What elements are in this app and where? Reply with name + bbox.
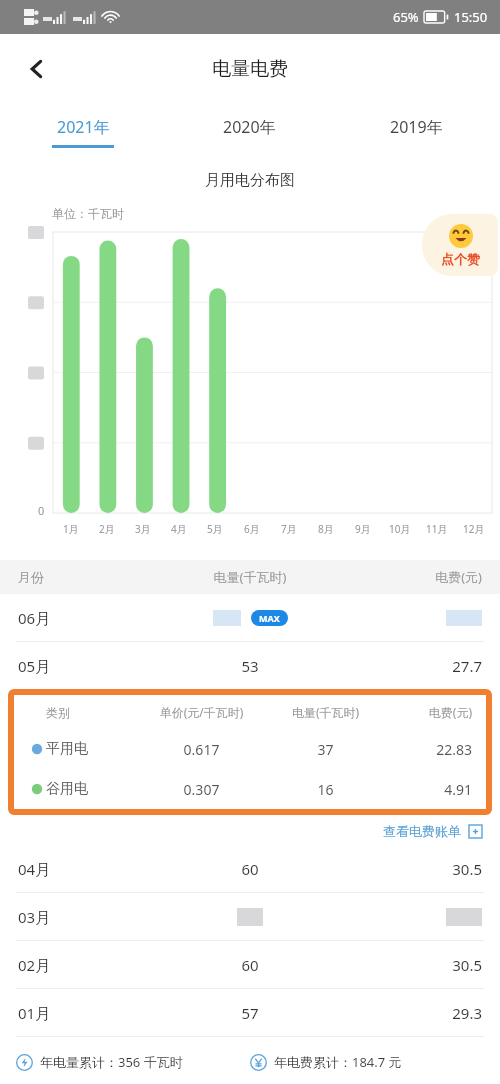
staticText: 电费(元) xyxy=(337,568,482,586)
button[interactable]: 点个赞 xyxy=(422,214,498,276)
button[interactable]: 04月 xyxy=(0,845,500,892)
staticText: 2019年 xyxy=(390,116,443,138)
staticText: 查看电费账单 xyxy=(383,823,461,839)
staticText: 单位：千瓦时 xyxy=(52,206,124,221)
staticText: 57 xyxy=(163,1003,337,1023)
staticText: 8月 xyxy=(318,522,334,536)
button[interactable]: 2021年 xyxy=(0,104,166,160)
button[interactable]: 03月 xyxy=(0,893,500,940)
staticText: 01月 xyxy=(18,1003,163,1023)
button[interactable]: 2019年 xyxy=(333,104,500,160)
staticText: 0.617 xyxy=(135,740,268,759)
staticText: 2021年 xyxy=(57,116,110,138)
staticText: 2月 xyxy=(99,522,115,536)
button[interactable]: 02月 xyxy=(0,941,500,988)
staticText: 30.5 xyxy=(337,955,482,975)
staticText: 年电量累计：356 千瓦时 xyxy=(40,1053,183,1071)
staticText: 16 xyxy=(268,780,383,799)
button[interactable]: 2020年 xyxy=(166,104,333,160)
staticText: 29.3 xyxy=(337,1003,482,1023)
button[interactable]: 查看电费账单 xyxy=(383,823,482,839)
staticText: 27.7 xyxy=(337,656,482,676)
staticText: 4月 xyxy=(171,522,187,536)
staticText: 类别 xyxy=(46,705,135,720)
staticText: 3月 xyxy=(135,522,151,536)
staticText: 03月 xyxy=(18,907,163,927)
staticText: 65% xyxy=(393,8,419,26)
staticText: 0.307 xyxy=(135,780,268,799)
staticText: 电量(千瓦时) xyxy=(268,704,383,720)
button[interactable]: 05月 xyxy=(0,642,500,689)
staticText: 12月 xyxy=(463,522,485,536)
staticText: 平用电 xyxy=(46,740,135,758)
staticText: 谷用电 xyxy=(46,780,135,798)
staticText: 7月 xyxy=(281,522,297,536)
staticText: 15:50 xyxy=(454,8,488,26)
staticText: 点个赞 xyxy=(441,251,480,267)
button[interactable]: 06月 xyxy=(0,594,500,641)
staticText: 53 xyxy=(163,656,337,676)
staticText: 9月 xyxy=(355,522,371,536)
staticText: 06月 xyxy=(18,608,163,628)
staticText: 0 xyxy=(38,503,45,518)
staticText: 04月 xyxy=(18,859,163,879)
staticText: 30.5 xyxy=(337,859,482,879)
staticText: 60 xyxy=(163,859,337,879)
staticText: 02月 xyxy=(18,955,163,975)
staticText: 电量(千瓦时) xyxy=(163,568,337,586)
staticText: 6月 xyxy=(244,522,260,536)
staticText: 月用电分布图 xyxy=(205,171,295,190)
staticText: 月份 xyxy=(18,569,163,585)
staticText: 60 xyxy=(163,955,337,975)
staticText: 4.91 xyxy=(383,780,472,799)
staticText: 1月 xyxy=(63,522,79,536)
staticText: 10月 xyxy=(389,522,411,536)
staticText: 5月 xyxy=(207,522,223,536)
staticText: MAX xyxy=(259,612,280,624)
staticText: 2020年 xyxy=(223,116,276,138)
staticText: 11月 xyxy=(426,522,448,536)
staticText: 年电费累计：184.7 元 xyxy=(274,1053,402,1071)
staticText: 37 xyxy=(268,740,383,759)
button[interactable]: Back xyxy=(14,46,60,92)
button[interactable]: 01月 xyxy=(0,989,500,1036)
staticText: 22.83 xyxy=(383,740,472,759)
staticText: 电量电费 xyxy=(212,57,288,81)
staticText: 05月 xyxy=(18,656,163,676)
staticText: 单价(元/千瓦时) xyxy=(135,704,268,720)
staticText: 电费(元) xyxy=(383,704,472,720)
